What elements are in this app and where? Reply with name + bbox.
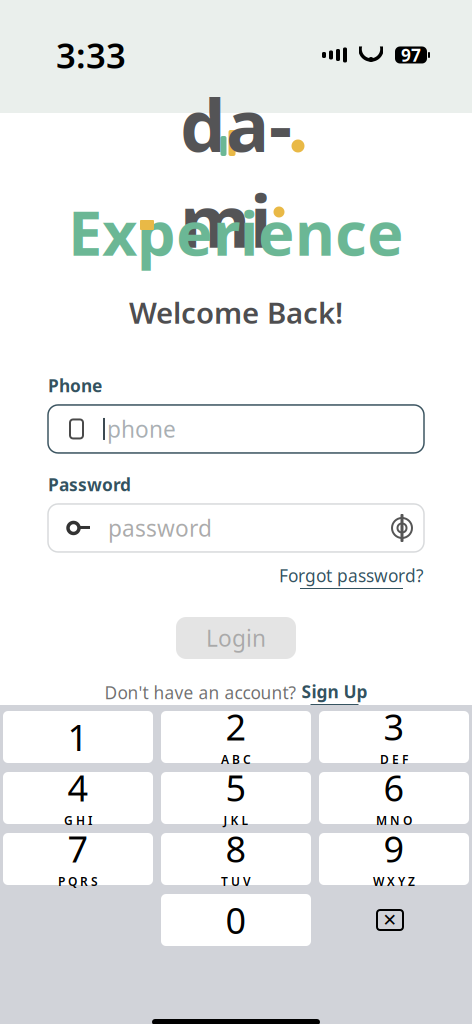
staticText: W X Y Z [373, 873, 415, 889]
staticText: ✕ [382, 910, 397, 930]
staticText: 97 [401, 43, 421, 66]
staticText: 8 [225, 825, 246, 872]
staticText: password [108, 513, 212, 543]
button[interactable]: 5 [157, 772, 315, 824]
button[interactable]: Delete [315, 894, 465, 946]
staticText: Welcome Back! [129, 293, 343, 332]
staticText: J K L [223, 812, 248, 828]
staticText: Phone [48, 374, 102, 397]
staticText: 0 [225, 896, 246, 944]
button[interactable]: 4 [0, 772, 157, 824]
staticText: A B C [221, 751, 251, 767]
staticText: 7 [67, 825, 88, 872]
staticText: 1 [67, 713, 88, 761]
button[interactable]: 6 [315, 772, 472, 824]
button[interactable]: 0 [157, 894, 315, 946]
button[interactable]: Show password [380, 505, 424, 551]
staticText: Forgot password? [279, 564, 424, 587]
button[interactable]: 7 [0, 833, 157, 885]
button[interactable]: 9 [315, 833, 472, 885]
staticText: phone [107, 414, 176, 444]
staticText: 6 [383, 764, 404, 811]
staticText: D E F [380, 751, 408, 767]
staticText: G H I [64, 812, 92, 828]
staticText: Don't have an account? [104, 681, 296, 704]
button[interactable]: 3 [315, 711, 472, 763]
button[interactable]: 2 [157, 711, 315, 763]
staticText: Experience [68, 191, 404, 273]
staticText: T U V [221, 873, 251, 889]
staticText: dami [180, 76, 292, 268]
staticText: 5 [225, 764, 246, 811]
button[interactable]: 8 [157, 833, 315, 885]
staticText: M N O [376, 812, 412, 828]
button[interactable]: Login [176, 617, 296, 659]
staticText: Password [48, 473, 131, 496]
staticText: 3 [383, 703, 404, 750]
staticText: 9 [383, 825, 404, 872]
staticText: 3:33 [56, 32, 126, 78]
staticText: P Q R S [58, 873, 98, 889]
staticText: 2 [225, 703, 246, 750]
button[interactable]: Sign Up [301, 680, 367, 705]
staticText: 4 [67, 764, 88, 811]
button[interactable]: 1 [0, 711, 157, 763]
staticText: Sign Up [301, 680, 367, 703]
button[interactable]: Forgot password? [279, 564, 424, 589]
staticText: Login [206, 623, 266, 653]
